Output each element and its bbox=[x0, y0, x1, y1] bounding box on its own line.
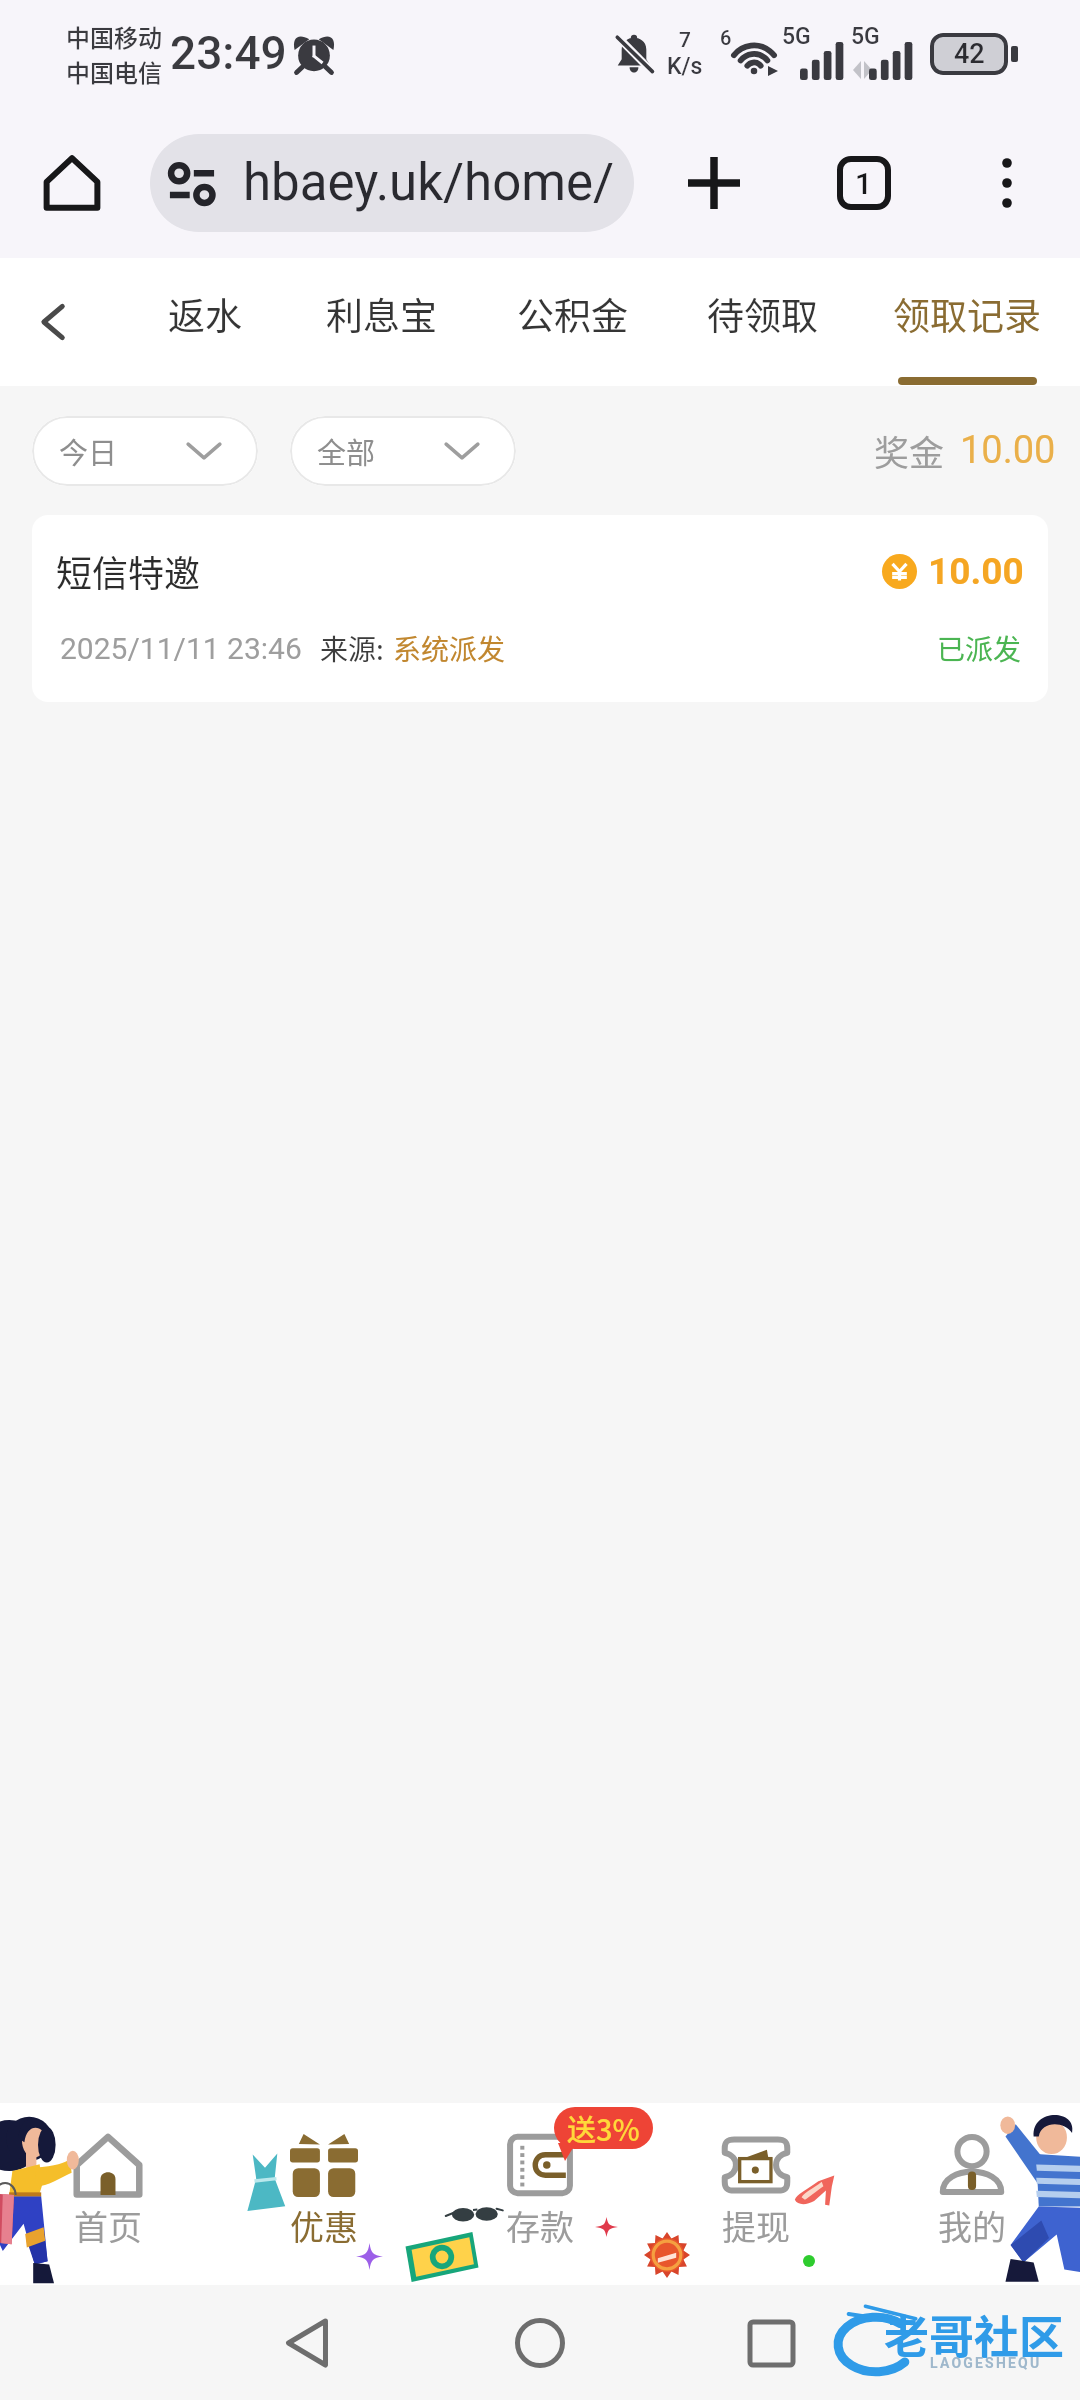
staticText: 中国电信 bbox=[66, 54, 162, 89]
staticText: 待领取 bbox=[707, 287, 818, 341]
staticText: 10.00 bbox=[928, 550, 1024, 593]
staticText: 我的 bbox=[938, 2201, 1006, 2250]
staticText: 来源: bbox=[320, 628, 384, 669]
button[interactable]: 公积金 bbox=[492, 258, 652, 386]
button[interactable]: 首页 bbox=[28, 2103, 188, 2285]
button[interactable]: 利息宝 bbox=[301, 258, 461, 386]
button[interactable]: 返水 bbox=[148, 258, 262, 386]
button[interactable]: 存款 bbox=[460, 2103, 620, 2285]
button[interactable]: New tab bbox=[670, 139, 758, 227]
staticText: 10.00 bbox=[960, 428, 1056, 473]
button[interactable]: Home bbox=[28, 139, 116, 227]
button[interactable]: 今日 bbox=[32, 416, 258, 486]
staticText: LAOGESHEQU bbox=[930, 2355, 1042, 2371]
button[interactable]: 短信特邀 bbox=[32, 515, 1048, 702]
button[interactable]: More options bbox=[963, 139, 1051, 227]
staticText: 首页 bbox=[74, 2201, 142, 2250]
button[interactable]: 全部 bbox=[290, 416, 516, 486]
staticText: 23:49 bbox=[170, 26, 287, 80]
staticText: 已派发 bbox=[937, 628, 1022, 669]
staticText: 短信特邀 bbox=[56, 545, 201, 597]
button[interactable]: 我的 bbox=[892, 2103, 1052, 2285]
staticText: 提现 bbox=[722, 2201, 790, 2250]
staticText: 42 bbox=[954, 38, 985, 70]
staticText: 公积金 bbox=[517, 287, 628, 341]
button[interactable]: 优惠 bbox=[244, 2103, 404, 2285]
staticText: 中国移动 bbox=[66, 19, 162, 54]
staticText: 利息宝 bbox=[326, 287, 437, 341]
button[interactable]: Tabs bbox=[820, 139, 908, 227]
staticText: K/s bbox=[667, 53, 703, 80]
staticText: 老哥社区 bbox=[884, 2302, 1065, 2367]
button[interactable]: hbaey.uk/home/ bbox=[150, 134, 634, 232]
staticText: 6 bbox=[720, 26, 732, 49]
staticText: 5G bbox=[782, 23, 811, 50]
staticText: 7 bbox=[679, 28, 691, 53]
staticText: hbaey.uk/home/ bbox=[243, 153, 615, 213]
button[interactable]: 待领取 bbox=[682, 258, 842, 386]
staticText: 1 bbox=[855, 166, 873, 201]
button[interactable]: Home bbox=[485, 2288, 595, 2398]
staticText: 今日 bbox=[59, 430, 118, 472]
button[interactable]: 领取记录 bbox=[887, 258, 1047, 386]
staticText: 奖金 bbox=[874, 425, 945, 476]
staticText: 领取记录 bbox=[893, 287, 1041, 341]
staticText: 返水 bbox=[168, 287, 242, 341]
button[interactable]: 提现 bbox=[676, 2103, 836, 2285]
staticText: 5G bbox=[851, 23, 880, 50]
staticText: 优惠 bbox=[290, 2201, 358, 2250]
button[interactable]: Back bbox=[252, 2288, 362, 2398]
staticText: 全部 bbox=[317, 430, 376, 472]
staticText: 2025/11/11 23:46 bbox=[60, 631, 302, 666]
staticText: 系统派发 bbox=[393, 628, 506, 669]
button[interactable]: Back bbox=[0, 258, 108, 386]
staticText: 送3% bbox=[567, 2107, 640, 2149]
button[interactable]: Recents bbox=[716, 2288, 826, 2398]
staticText: 存款 bbox=[506, 2201, 574, 2250]
